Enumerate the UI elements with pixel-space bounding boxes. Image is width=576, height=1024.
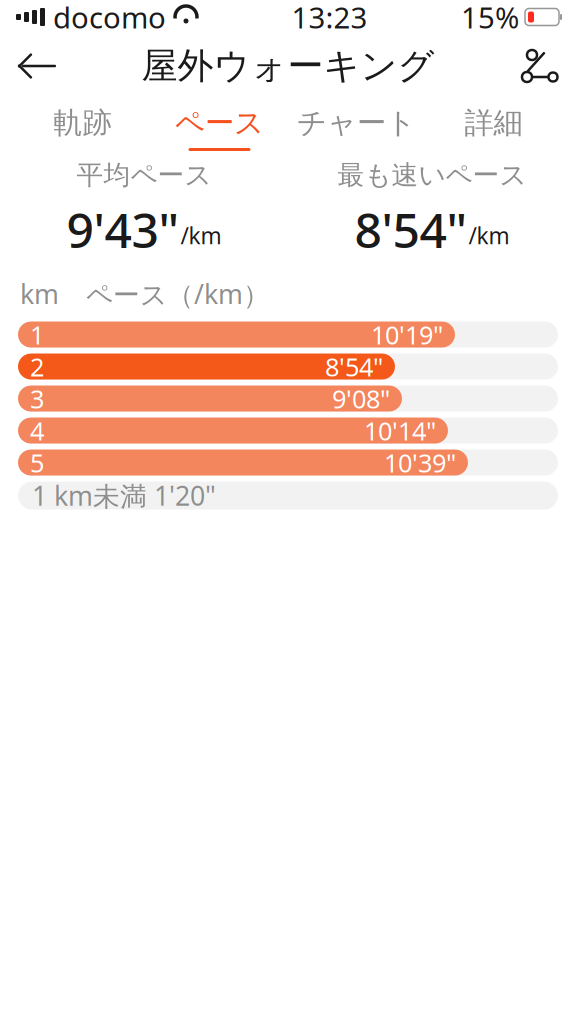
staticText: 軌跡 [53, 105, 111, 141]
button[interactable]: 軌跡 [14, 98, 151, 158]
staticText: 10'19" [371, 318, 443, 351]
staticText: 1 km未満 1'20" [32, 478, 216, 513]
staticText: 8'54" [354, 197, 467, 261]
staticText: 13:23 [291, 0, 367, 36]
button[interactable]: ルートを共有 [504, 36, 576, 96]
staticText: 1 [30, 318, 44, 351]
staticText: 2 [30, 350, 44, 383]
staticText: 9'08" [332, 382, 390, 415]
staticText: 最も速いペース [337, 159, 526, 192]
button[interactable]: 戻る [0, 36, 72, 96]
staticText: docomo [53, 0, 166, 36]
staticText: 屋外ウォーキング [141, 44, 434, 88]
staticText: 3 [30, 382, 44, 415]
button[interactable]: チャート [288, 98, 425, 158]
staticText: チャート [297, 105, 416, 141]
staticText: km ペース（/km） [20, 276, 270, 312]
staticText: 平均ペース [76, 159, 211, 192]
staticText: 5 [30, 446, 44, 479]
staticText: /km [180, 220, 221, 250]
staticText: /km [468, 220, 509, 250]
button[interactable]: 詳細 [425, 98, 562, 158]
staticText: ペース [175, 105, 264, 141]
staticText: 9'43" [66, 197, 179, 261]
staticText: 詳細 [464, 105, 522, 141]
staticText: 10'39" [384, 446, 456, 479]
staticText: 4 [30, 414, 44, 447]
staticText: 10'14" [364, 414, 436, 447]
button[interactable]: ペース [151, 98, 288, 158]
staticText: 8'54" [325, 350, 383, 383]
staticText: 15% [461, 0, 519, 36]
